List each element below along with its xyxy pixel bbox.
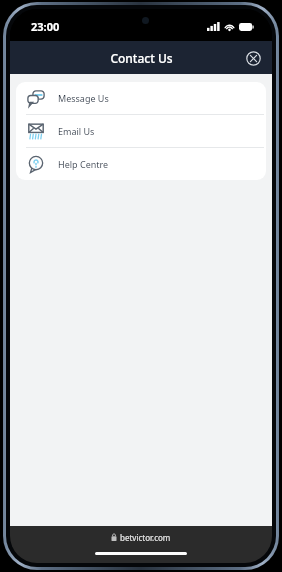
staticText: betvictor.com bbox=[120, 532, 171, 543]
staticText: Message Us bbox=[58, 92, 109, 104]
button[interactable]: Close bbox=[242, 47, 264, 69]
button[interactable]: Help Centre bbox=[16, 148, 266, 180]
button[interactable]: betvictor.com bbox=[10, 526, 272, 548]
staticText: Email Us bbox=[58, 125, 95, 137]
staticText: Help Centre bbox=[58, 158, 109, 170]
staticText: 23:00 bbox=[31, 19, 60, 34]
button[interactable]: Message Us bbox=[16, 82, 266, 114]
staticText: Contact Us bbox=[110, 50, 173, 66]
button[interactable]: Email Us bbox=[16, 115, 266, 147]
